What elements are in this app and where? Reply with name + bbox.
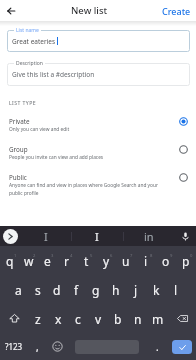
staticText: n: [134, 311, 142, 327]
button[interactable]: s: [28, 275, 47, 304]
staticText: o: [162, 253, 170, 269]
button[interactable]: n: [128, 304, 148, 333]
staticText: 1: [14, 253, 17, 259]
button[interactable]: m: [148, 304, 168, 333]
button[interactable]: b: [108, 304, 128, 333]
button[interactable]: c: [68, 304, 88, 333]
staticText: k: [153, 282, 160, 298]
button[interactable]: I: [20, 226, 71, 246]
staticText: Group: [9, 145, 28, 154]
staticText: m: [152, 311, 164, 327]
staticText: q: [6, 253, 14, 269]
button[interactable]: Emoji: [47, 333, 67, 360]
staticText: in: [144, 229, 154, 244]
staticText: Description: [16, 60, 43, 67]
button[interactable]: Voice input: [175, 226, 196, 246]
button[interactable]: j: [126, 275, 146, 304]
staticText: 2: [33, 253, 36, 259]
button[interactable]: Create: [158, 3, 196, 19]
staticText: g: [92, 282, 100, 298]
staticText: 7: [130, 253, 133, 259]
staticText: Great eateries: [12, 37, 56, 46]
staticText: 0: [190, 253, 193, 259]
staticText: f: [74, 282, 79, 298]
staticText: .: [156, 340, 159, 354]
staticText: s: [35, 282, 41, 298]
staticText: j: [134, 282, 138, 298]
button[interactable]: Shift: [0, 304, 28, 333]
staticText: u: [122, 253, 130, 269]
staticText: v: [95, 311, 102, 327]
staticText: r: [64, 253, 69, 269]
button[interactable]: t: [76, 246, 96, 275]
staticText: e: [44, 253, 51, 269]
button[interactable]: Private: [0, 117, 196, 145]
button[interactable]: a: [9, 275, 28, 304]
button[interactable]: e: [38, 246, 57, 275]
staticText: y: [103, 253, 110, 269]
button[interactable]: Enter: [167, 333, 196, 360]
button[interactable]: ,: [28, 333, 47, 360]
staticText: 5: [90, 253, 93, 259]
button[interactable]: Great eateries: [7, 30, 190, 52]
button[interactable]: Give this list a #description: [7, 63, 190, 86]
button[interactable]: g: [86, 275, 106, 304]
button[interactable]: in: [123, 226, 175, 246]
staticText: I: [95, 229, 99, 244]
staticText: w: [24, 253, 34, 269]
button[interactable]: I: [71, 226, 123, 246]
staticText: d: [53, 282, 61, 298]
staticText: LIST TYPE: [9, 99, 37, 106]
button[interactable]: x: [48, 304, 68, 333]
button[interactable]: o: [156, 246, 176, 275]
button[interactable]: z: [28, 304, 48, 333]
staticText: ?123: [5, 341, 23, 352]
button[interactable]: l: [166, 275, 186, 304]
button[interactable]: Group: [0, 145, 196, 173]
staticText: Anyone can find and view in places where…: [9, 182, 165, 196]
button[interactable]: u: [116, 246, 136, 275]
button[interactable]: k: [146, 275, 166, 304]
staticText: Give this list a #description: [12, 70, 95, 79]
staticText: l: [174, 282, 178, 298]
button[interactable]: f: [66, 275, 86, 304]
button[interactable]: Backspace: [168, 304, 196, 333]
button[interactable]: Expand toolbar: [0, 226, 20, 246]
button[interactable]: d: [47, 275, 66, 304]
staticText: New list: [71, 4, 108, 17]
staticText: t: [84, 253, 89, 269]
staticText: i: [144, 253, 148, 269]
button[interactable]: i: [136, 246, 156, 275]
button[interactable]: h: [106, 275, 126, 304]
staticText: List name: [16, 27, 39, 34]
button[interactable]: y: [96, 246, 116, 275]
staticText: c: [75, 311, 81, 327]
staticText: x: [55, 311, 62, 327]
staticText: p: [182, 253, 190, 269]
staticText: Private: [9, 117, 30, 126]
staticText: Create: [162, 5, 191, 17]
button[interactable]: w: [19, 246, 38, 275]
staticText: b: [114, 311, 122, 327]
staticText: 6: [110, 253, 113, 259]
staticText: 4: [70, 253, 73, 259]
button[interactable]: q: [0, 246, 19, 275]
staticText: h: [112, 282, 120, 298]
button[interactable]: ?123: [0, 333, 28, 360]
staticText: ,: [36, 340, 39, 354]
button[interactable]: Space: [67, 333, 147, 360]
button[interactable]: v: [88, 304, 108, 333]
staticText: a: [15, 282, 22, 298]
button[interactable]: .: [147, 333, 167, 360]
button[interactable]: p: [176, 246, 196, 275]
staticText: 8: [150, 253, 153, 259]
staticText: I: [44, 229, 48, 244]
button[interactable]: r: [57, 246, 76, 275]
staticText: z: [35, 311, 41, 327]
staticText: People you invite can view and add place…: [9, 154, 104, 161]
staticText: Only you can view and edit: [9, 126, 70, 133]
button[interactable]: Public: [0, 173, 196, 201]
staticText: 3: [51, 253, 54, 259]
staticText: Public: [9, 173, 27, 182]
button[interactable]: Back: [0, 0, 21, 21]
